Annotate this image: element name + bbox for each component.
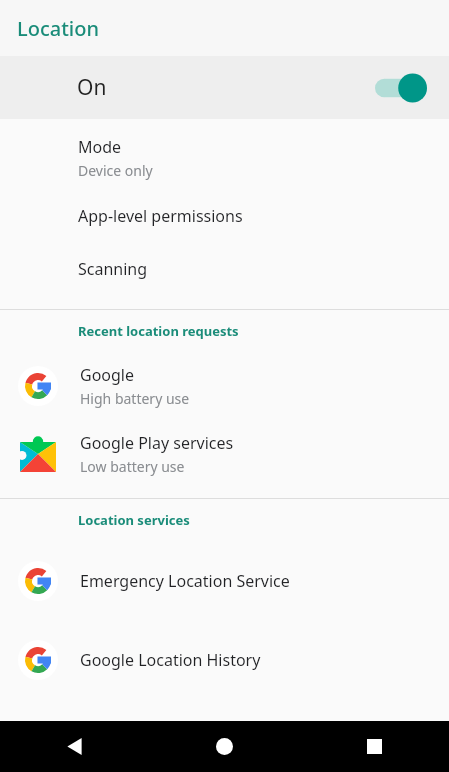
staticText: Recent location requests <box>78 322 239 340</box>
button[interactable]: Mode <box>0 127 449 189</box>
button[interactable]: Scanning <box>0 242 449 295</box>
staticText: Scanning <box>78 258 148 280</box>
button[interactable]: Back <box>0 721 149 772</box>
staticText: Mode <box>78 136 122 158</box>
staticText: Low battery use <box>80 457 185 476</box>
button[interactable]: Emergency Location Service <box>0 541 449 620</box>
button[interactable]: Recent apps <box>299 721 449 772</box>
staticText: Emergency Location Service <box>80 570 290 592</box>
button[interactable]: App-level permissions <box>0 189 449 242</box>
button[interactable]: On <box>0 56 449 119</box>
button[interactable]: Home <box>149 721 299 772</box>
staticText: On <box>77 73 375 102</box>
staticText: App-level permissions <box>78 205 243 227</box>
staticText: Device only <box>78 161 153 180</box>
staticText: Google Play services <box>80 432 234 454</box>
button[interactable]: Google <box>0 352 449 420</box>
button[interactable]: Google Location History <box>0 620 449 699</box>
staticText: Location <box>17 15 99 42</box>
staticText: Location services <box>78 511 190 529</box>
staticText: Google <box>80 364 135 386</box>
staticText: High battery use <box>80 389 190 408</box>
button[interactable]: Google Play services <box>0 420 449 488</box>
staticText: Google Location History <box>80 649 261 671</box>
button[interactable]: Location on toggle <box>375 73 427 103</box>
